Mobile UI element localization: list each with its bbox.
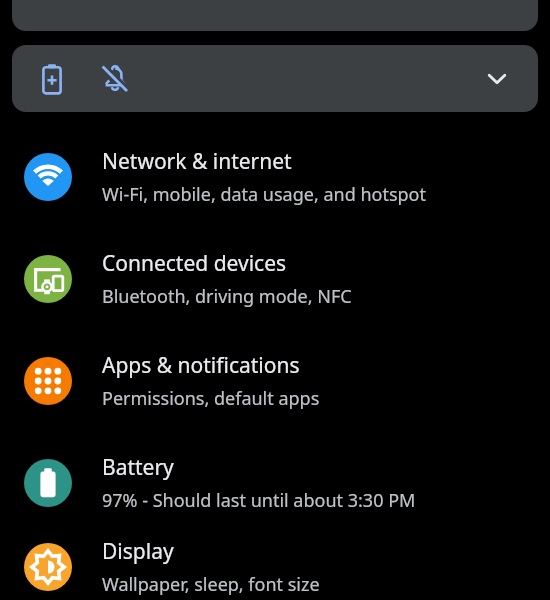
button[interactable]	[12, 0, 538, 31]
staticText: Network & internet	[102, 147, 292, 176]
staticText: 97% - Should last until about 3:30 PM	[102, 488, 416, 513]
staticText: Battery	[102, 453, 174, 482]
button[interactable]: Display	[0, 534, 550, 600]
button[interactable]: Network & internet	[0, 126, 550, 228]
staticText: Permissions, default apps	[102, 386, 320, 411]
staticText: Wi-Fi, mobile, data usage, and hotspot	[102, 182, 426, 207]
staticText: Wallpaper, sleep, font size	[102, 572, 320, 597]
button[interactable]: Connected devices	[0, 228, 550, 330]
button[interactable]	[12, 45, 538, 112]
staticText: Connected devices	[102, 249, 287, 278]
button[interactable]: Apps & notifications	[0, 330, 550, 432]
button[interactable]: Battery	[0, 432, 550, 534]
staticText: Display	[102, 537, 174, 566]
staticText: Bluetooth, driving mode, NFC	[102, 284, 352, 309]
staticText: Apps & notifications	[102, 351, 300, 380]
